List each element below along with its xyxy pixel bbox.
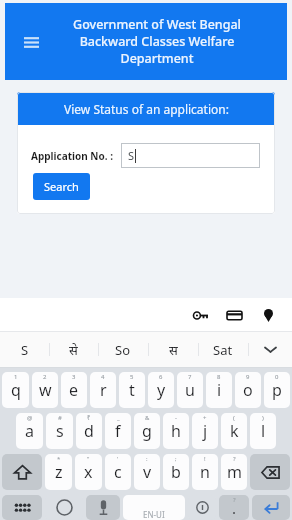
button[interactable]: So	[98, 332, 148, 367]
button[interactable]: S	[121, 143, 260, 168]
staticText: '	[117, 455, 119, 463]
button[interactable]: g	[134, 413, 160, 449]
button[interactable]: Payment method	[223, 304, 245, 326]
button[interactable]: Sat	[198, 332, 248, 367]
button[interactable]: p	[264, 372, 290, 408]
button[interactable]: h	[163, 413, 189, 449]
button[interactable]: t	[119, 372, 145, 408]
button[interactable]: q	[2, 372, 29, 408]
staticText: Sat	[213, 341, 233, 359]
button[interactable]: c	[105, 454, 131, 490]
button[interactable]: i	[206, 372, 232, 408]
staticText: z	[55, 461, 63, 483]
button[interactable]: स	[148, 332, 198, 367]
staticText: h	[171, 420, 181, 442]
button[interactable]: S	[0, 332, 49, 367]
button[interactable]: Menu	[16, 27, 46, 57]
staticText: से	[69, 341, 78, 359]
staticText: 9	[246, 373, 250, 381]
button[interactable]: s	[46, 413, 73, 449]
staticText: 0	[275, 373, 279, 381]
button[interactable]: j	[192, 413, 218, 449]
button[interactable]: f	[105, 413, 131, 449]
staticText: m	[227, 461, 242, 483]
staticText: #	[58, 414, 62, 422]
button[interactable]: Address	[257, 304, 279, 326]
staticText: "	[87, 455, 90, 463]
staticText: Government of West Bengal Backward Class…	[73, 16, 241, 67]
staticText: n	[200, 461, 210, 483]
button[interactable]: Search	[33, 173, 90, 200]
staticText: 1	[14, 373, 18, 381]
staticText: स	[169, 341, 178, 359]
staticText: 6	[159, 373, 163, 381]
staticText: i	[217, 379, 222, 401]
staticText: S	[128, 148, 135, 163]
staticText: 7	[188, 373, 192, 381]
staticText: So	[115, 341, 131, 359]
button[interactable]: b	[163, 454, 189, 490]
staticText: ?	[233, 496, 236, 504]
button[interactable]: a	[16, 413, 43, 449]
button[interactable]: Settings	[188, 495, 216, 520]
button[interactable]: Backspace	[250, 454, 290, 490]
staticText: *	[57, 455, 61, 463]
button[interactable]: .	[219, 495, 249, 520]
button[interactable]: z	[45, 454, 72, 490]
button[interactable]: Space	[123, 495, 185, 520]
staticText: v	[143, 461, 152, 483]
staticText: x	[84, 461, 93, 483]
staticText: d	[84, 420, 94, 442]
staticText: o	[243, 379, 253, 401]
button[interactable]: Symbols	[2, 495, 42, 520]
staticText: &	[145, 414, 150, 422]
staticText: ₹	[87, 414, 91, 422]
staticText: 5	[130, 373, 134, 381]
staticText: g	[142, 420, 152, 442]
button[interactable]: x	[75, 454, 102, 490]
staticText: w	[39, 379, 52, 401]
button[interactable]: k	[221, 413, 247, 449]
button[interactable]: n	[192, 454, 218, 490]
staticText: ;	[175, 455, 177, 463]
button[interactable]: से	[49, 332, 98, 367]
staticText: r	[100, 379, 107, 401]
button[interactable]: Enter	[252, 495, 290, 520]
staticText: Search	[44, 179, 79, 194]
button[interactable]: m	[221, 454, 247, 490]
staticText: j	[203, 420, 208, 442]
button[interactable]: w	[32, 372, 58, 408]
button[interactable]: r	[90, 372, 116, 408]
staticText: ?	[233, 455, 236, 463]
staticText: c	[114, 461, 122, 483]
button[interactable]: o	[235, 372, 261, 408]
staticText: S	[21, 341, 29, 359]
staticText: 8	[217, 373, 221, 381]
button[interactable]: Saved password	[189, 304, 211, 326]
staticText: 4	[101, 373, 105, 381]
button[interactable]: Shift	[2, 454, 42, 490]
button[interactable]: l	[250, 413, 276, 449]
button[interactable]: Expand suggestions	[248, 332, 292, 367]
staticText: 3	[72, 373, 76, 381]
button[interactable]: u	[177, 372, 203, 408]
staticText: _	[117, 414, 120, 422]
staticText: !	[204, 455, 206, 463]
staticText: e	[69, 379, 79, 401]
staticText: -	[175, 414, 177, 422]
staticText: View Status of an application:	[64, 101, 229, 117]
button[interactable]: e	[61, 372, 87, 408]
button[interactable]: Voice input	[86, 495, 120, 520]
staticText: u	[185, 379, 195, 401]
staticText: p	[272, 379, 282, 401]
staticText: )	[262, 414, 264, 422]
staticText: a	[25, 420, 34, 442]
button[interactable]: v	[134, 454, 160, 490]
staticText: t	[129, 379, 135, 401]
button[interactable]: Emoji	[45, 495, 83, 520]
button[interactable]: d	[76, 413, 102, 449]
staticText: l	[261, 420, 266, 442]
staticText: 2	[43, 373, 47, 381]
staticText: @	[27, 414, 33, 422]
button[interactable]: y	[148, 372, 174, 408]
